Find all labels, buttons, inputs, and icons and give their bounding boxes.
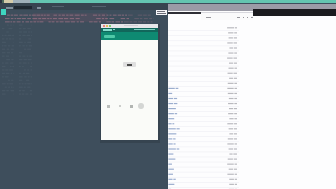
button[interactable] — [104, 35, 115, 38]
button[interactable]: Rotate — [138, 103, 144, 109]
button[interactable] — [123, 62, 136, 67]
